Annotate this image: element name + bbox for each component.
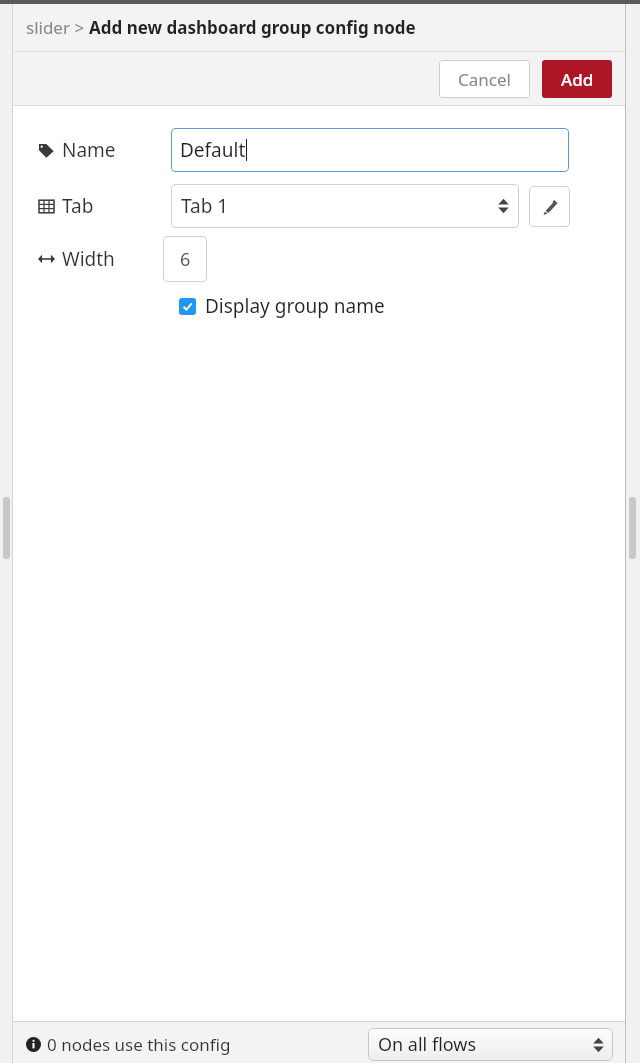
staticText: slider: [26, 16, 70, 39]
staticText: Add: [561, 68, 594, 91]
staticText: Name: [62, 137, 116, 163]
staticText: Tab: [62, 193, 94, 219]
button[interactable]: Display group name: [179, 291, 385, 321]
staticText: >: [70, 16, 89, 39]
staticText: Display group name: [205, 293, 385, 319]
staticText: Width: [62, 246, 115, 272]
staticText: Default: [180, 137, 246, 163]
staticText: Tab 1: [181, 193, 229, 219]
staticText: Cancel: [458, 68, 511, 91]
button[interactable]: Edit tab: [529, 186, 570, 227]
staticText: Add new dashboard group config node: [89, 16, 416, 39]
button[interactable]: Cancel: [439, 60, 530, 98]
staticText: On all flows: [378, 1032, 477, 1057]
staticText: 6: [180, 247, 191, 272]
button[interactable]: 6: [163, 236, 207, 282]
button[interactable]: Tab 1: [171, 184, 519, 228]
button[interactable]: Default: [171, 128, 569, 172]
button[interactable]: Add: [542, 60, 612, 98]
button[interactable]: On all flows: [368, 1028, 613, 1061]
staticText: 0 nodes use this config: [47, 1033, 231, 1056]
